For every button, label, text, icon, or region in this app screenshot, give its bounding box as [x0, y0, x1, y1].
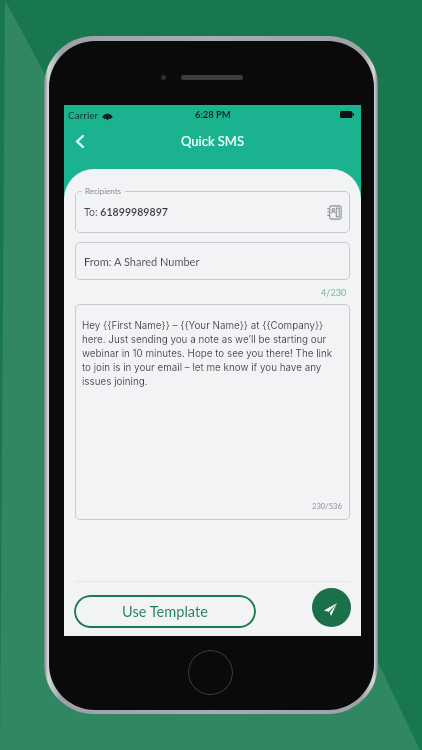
other: Choose contacts — [327, 205, 342, 220]
button[interactable]: To: 61899989897 — [75, 191, 350, 233]
staticText: 4/230 — [321, 287, 347, 298]
staticText: Hey {{First Name}} – {{Your Name}} at {{… — [82, 320, 340, 387]
button[interactable]: Home — [188, 650, 233, 695]
staticText: Recipients — [85, 186, 122, 196]
staticText: 6:28 PM — [195, 109, 231, 120]
button[interactable]: Send — [312, 588, 351, 627]
staticText: Quick SMS — [181, 133, 244, 149]
button[interactable]: Back — [67, 126, 93, 156]
staticText: Carrier — [68, 109, 99, 121]
staticText: From: A Shared Number — [84, 255, 200, 268]
button[interactable]: From: A Shared Number — [75, 242, 350, 280]
staticText: To: 61899989897 — [84, 206, 168, 219]
staticText: 230/536 — [312, 501, 342, 510]
other: Wi-Fi — [102, 111, 113, 120]
button[interactable]: Hey {{First Name}} – {{Your Name}} at {{… — [75, 304, 350, 520]
staticText: Use Template — [122, 603, 208, 621]
button[interactable]: Use Template — [74, 595, 256, 628]
